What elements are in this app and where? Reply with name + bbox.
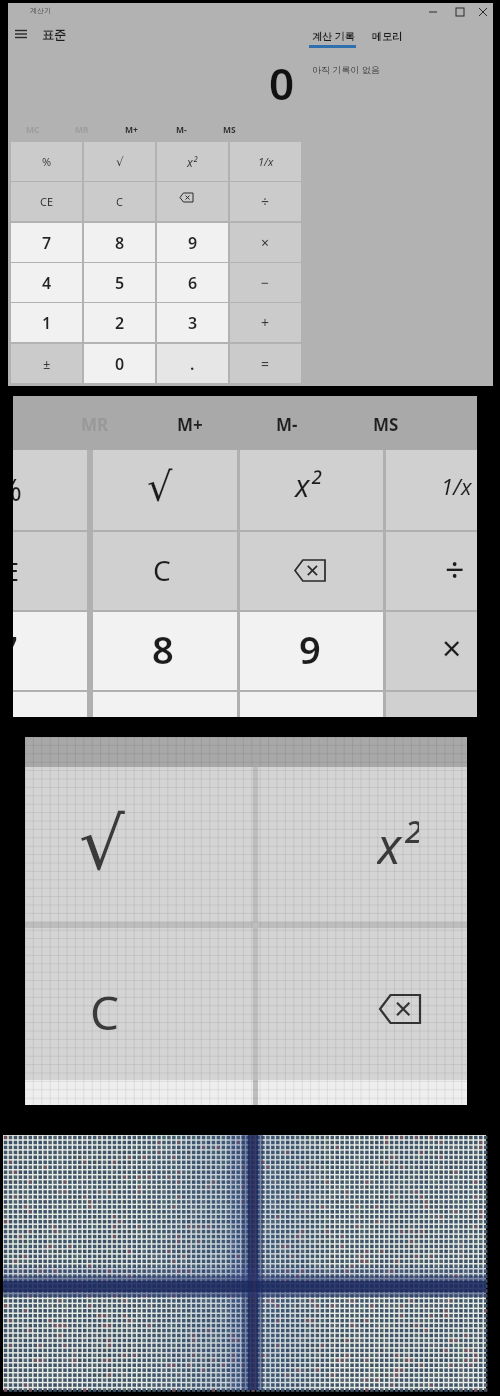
staticText: % bbox=[13, 469, 22, 510]
button[interactable] bbox=[386, 532, 477, 610]
button[interactable] bbox=[14, 28, 28, 40]
button[interactable]: √ bbox=[84, 142, 155, 181]
button[interactable]: 1 bbox=[11, 303, 82, 342]
staticText: M- bbox=[176, 124, 187, 136]
staticText: MS bbox=[223, 124, 236, 136]
button[interactable]: M- bbox=[165, 123, 197, 137]
button[interactable]: MS bbox=[213, 123, 245, 137]
staticText: x² bbox=[377, 811, 419, 871]
button[interactable] bbox=[93, 612, 237, 690]
staticText: 4 bbox=[42, 272, 52, 294]
button[interactable] bbox=[240, 450, 383, 530]
staticText: C bbox=[153, 551, 171, 589]
staticText: 메모리 bbox=[372, 30, 402, 43]
staticText: M+ bbox=[177, 413, 203, 436]
button[interactable]: M+ bbox=[115, 123, 147, 137]
button[interactable]: 메모리 bbox=[364, 25, 410, 47]
button[interactable]: 8 bbox=[84, 223, 155, 262]
button[interactable] bbox=[13, 532, 87, 610]
button[interactable]: % bbox=[11, 142, 82, 181]
button[interactable]: 6 bbox=[157, 263, 228, 302]
staticText: 6 bbox=[188, 272, 198, 294]
staticText: ÷ bbox=[261, 192, 270, 211]
staticText: 0 bbox=[115, 353, 125, 375]
staticText: x² bbox=[295, 465, 321, 506]
staticText: M- bbox=[276, 413, 298, 436]
staticText: 8 bbox=[152, 623, 174, 675]
button[interactable]: 2 bbox=[84, 303, 155, 342]
staticText: 1/x bbox=[441, 471, 472, 501]
staticText: MC bbox=[26, 124, 40, 136]
staticText: 7 bbox=[42, 232, 52, 254]
staticText: ÷ bbox=[445, 546, 465, 592]
button[interactable]: 7 bbox=[11, 223, 82, 262]
button[interactable]: 1/x bbox=[230, 142, 301, 181]
staticText: 7 bbox=[13, 623, 18, 675]
staticText: C bbox=[116, 194, 123, 209]
staticText: % bbox=[42, 154, 52, 169]
staticText: CE bbox=[40, 194, 54, 209]
button[interactable]: MR bbox=[66, 123, 98, 137]
button[interactable] bbox=[157, 182, 228, 221]
staticText: 9 bbox=[299, 623, 321, 675]
staticText: 3 bbox=[188, 312, 198, 334]
button[interactable]: ÷ bbox=[230, 182, 301, 221]
staticText: . bbox=[190, 353, 195, 375]
button[interactable]: 계산 기록 bbox=[303, 25, 363, 47]
button[interactable]: ± bbox=[11, 344, 82, 383]
staticText: − bbox=[261, 273, 270, 292]
button[interactable] bbox=[13, 612, 87, 690]
button[interactable]: + bbox=[230, 303, 301, 342]
staticText: 0 bbox=[269, 53, 295, 103]
button[interactable] bbox=[240, 612, 383, 690]
staticText: MS bbox=[373, 413, 399, 436]
button[interactable]: × bbox=[230, 223, 301, 262]
button[interactable] bbox=[424, 5, 490, 19]
button[interactable] bbox=[240, 532, 383, 610]
button[interactable]: MC bbox=[17, 123, 49, 137]
staticText: ± bbox=[43, 355, 51, 373]
staticText: 8 bbox=[115, 232, 125, 254]
staticText: 9 bbox=[188, 232, 198, 254]
staticText: √ bbox=[116, 155, 124, 169]
button[interactable]: . bbox=[157, 344, 228, 383]
button[interactable]: 5 bbox=[84, 263, 155, 302]
staticText: CE bbox=[13, 553, 19, 588]
staticText: MR bbox=[75, 124, 89, 136]
staticText: 계산 기록 bbox=[312, 29, 355, 43]
staticText: = bbox=[261, 354, 270, 373]
button[interactable]: 9 bbox=[157, 223, 228, 262]
staticText: + bbox=[261, 313, 270, 332]
staticText: √ bbox=[147, 464, 173, 511]
button[interactable]: C bbox=[84, 182, 155, 221]
button[interactable] bbox=[13, 450, 87, 530]
button[interactable]: 3 bbox=[157, 303, 228, 342]
staticText: 1/x bbox=[258, 154, 274, 169]
staticText: × bbox=[261, 233, 270, 252]
staticText: × bbox=[442, 625, 462, 671]
button[interactable]: 4 bbox=[11, 263, 82, 302]
button[interactable]: 0 bbox=[84, 344, 155, 383]
button[interactable]: = bbox=[230, 344, 301, 383]
staticText: 2 bbox=[115, 312, 125, 334]
staticText: 1 bbox=[42, 312, 52, 334]
staticText: MR bbox=[81, 413, 109, 436]
button[interactable]: x² bbox=[157, 142, 228, 181]
staticText: 아직 기록이 없음 bbox=[312, 63, 380, 75]
staticText: 표준 bbox=[42, 27, 66, 42]
button[interactable]: − bbox=[230, 263, 301, 302]
staticText: C bbox=[90, 981, 120, 1041]
staticText: 계산기 bbox=[30, 6, 51, 15]
button[interactable] bbox=[93, 450, 237, 530]
button[interactable] bbox=[386, 450, 477, 530]
staticText: M+ bbox=[125, 124, 138, 136]
staticText: √ bbox=[79, 802, 125, 886]
button[interactable] bbox=[93, 532, 237, 610]
button[interactable]: CE bbox=[11, 182, 82, 221]
staticText: x² bbox=[187, 154, 198, 170]
button[interactable] bbox=[386, 612, 477, 690]
